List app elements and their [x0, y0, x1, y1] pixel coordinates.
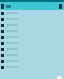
button[interactable]: Add [57, 76, 62, 79]
button[interactable] [0, 28, 64, 34]
button[interactable] [0, 46, 64, 52]
button[interactable] [0, 58, 64, 64]
button[interactable] [0, 16, 64, 22]
button[interactable] [0, 40, 64, 46]
button[interactable] [0, 34, 64, 40]
button[interactable] [0, 10, 64, 16]
button[interactable] [0, 52, 64, 58]
button[interactable] [0, 22, 64, 28]
button[interactable] [0, 64, 64, 70]
